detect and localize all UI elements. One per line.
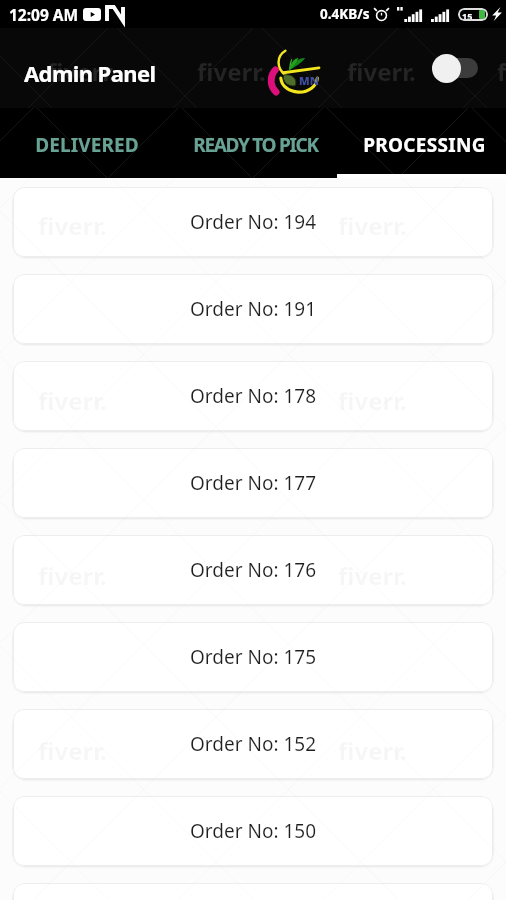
button[interactable]: DELIVERED — [0, 108, 168, 178]
staticText: fiverr. — [47, 55, 116, 88]
staticText: fiverr. — [38, 384, 107, 417]
staticText: 12:09 AM — [9, 4, 79, 25]
staticText: PROCESSING — [363, 132, 486, 158]
staticText: fiverr. — [338, 384, 407, 417]
button[interactable]: Order No: 194 — [13, 187, 493, 257]
button[interactable]: READY TO PICK — [168, 108, 337, 178]
staticText: 0.4KB/s — [320, 5, 370, 23]
staticText: READY TO PICK — [193, 132, 318, 158]
staticText: fiverr. — [338, 734, 407, 767]
button[interactable]: Order No: 149 — [13, 883, 493, 900]
button[interactable]: Order No: 175 — [13, 622, 493, 692]
button[interactable]: PROCESSING — [337, 108, 506, 178]
staticText: Order No: 176 — [190, 557, 317, 583]
staticText: fiverr. — [338, 209, 407, 242]
button[interactable]: Order No: 191 — [13, 274, 493, 344]
staticText: Order No: 178 — [190, 383, 317, 409]
staticText: Order No: 194 — [190, 209, 317, 235]
staticText: Order No: 191 — [190, 296, 317, 322]
staticText: fiverr. — [38, 209, 107, 242]
staticText: Order No: 152 — [190, 731, 317, 757]
staticText: DELIVERED — [35, 132, 139, 158]
staticText: fiverr. — [338, 559, 407, 592]
staticText: fiverr. — [497, 55, 506, 88]
staticText: fiverr. — [38, 559, 107, 592]
staticText: MN — [299, 73, 319, 88]
button[interactable]: Order No: 177 — [13, 448, 493, 518]
staticText: Admin Panel — [24, 58, 156, 88]
staticText: fiverr. — [38, 734, 107, 767]
button[interactable]: Order No: 176 — [13, 535, 493, 605]
button[interactable]: Toggle shop open — [432, 53, 478, 83]
staticText: fiverr. — [347, 55, 416, 88]
staticText: Order No: 177 — [190, 470, 317, 496]
button[interactable]: Order No: 178 — [13, 361, 493, 431]
staticText: Order No: 150 — [190, 818, 317, 844]
staticText: Order No: 175 — [190, 644, 317, 670]
button[interactable]: Order No: 150 — [13, 796, 493, 866]
staticText: 15 — [462, 10, 473, 19]
button[interactable]: Order No: 152 — [13, 709, 493, 779]
staticText: fiverr. — [197, 55, 266, 88]
